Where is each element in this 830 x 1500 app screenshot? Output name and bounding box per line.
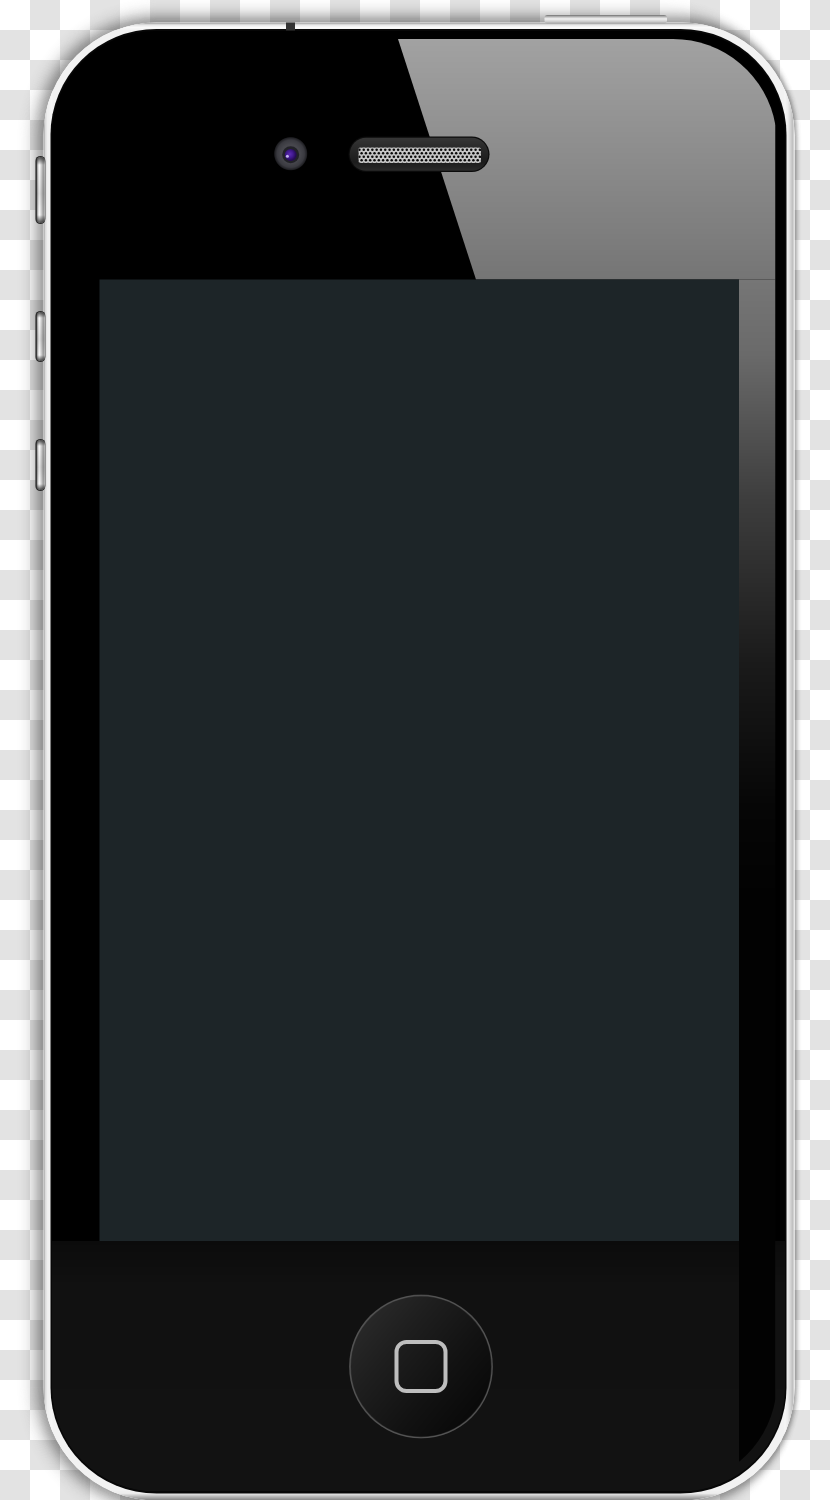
button[interactable] [0, 0, 830, 1500]
